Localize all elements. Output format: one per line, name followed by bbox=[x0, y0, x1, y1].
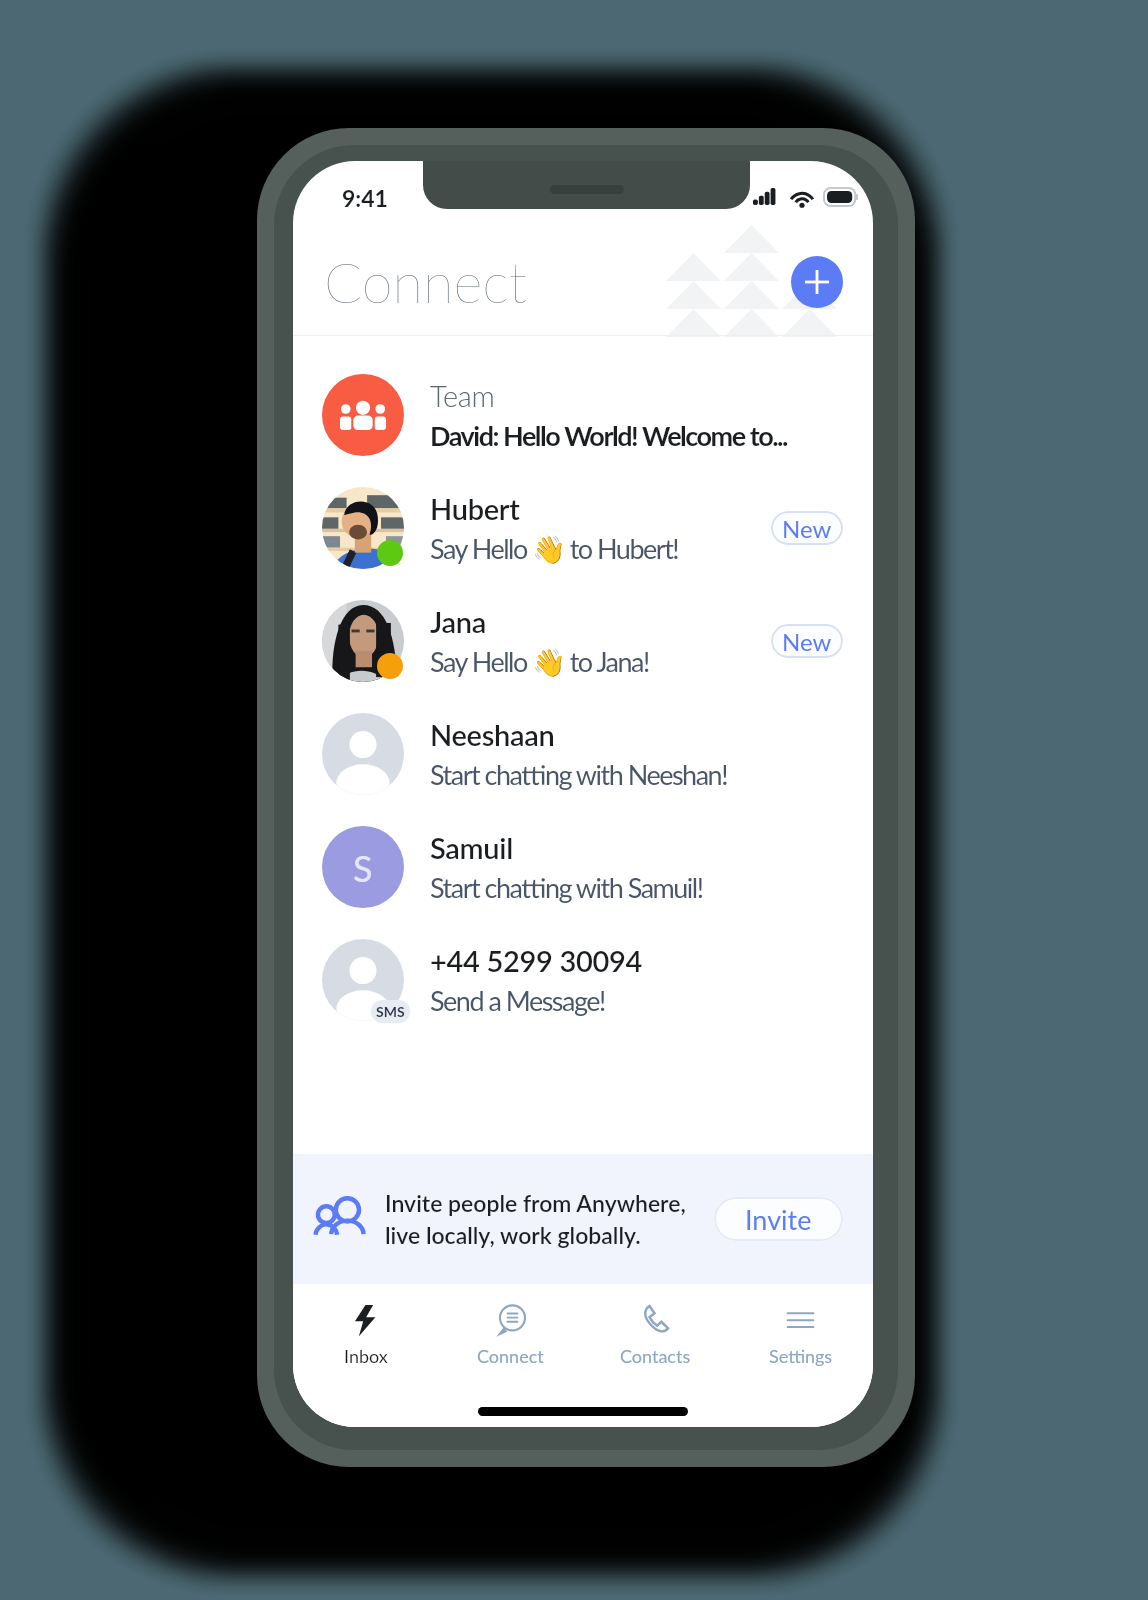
staticText: Start chatting with Neeshan! bbox=[430, 758, 727, 790]
staticText: Jana bbox=[430, 604, 487, 639]
staticText: Settings bbox=[769, 1345, 833, 1367]
staticText: 9:41 bbox=[342, 184, 388, 212]
button[interactable]: Team bbox=[293, 358, 873, 471]
button[interactable]: Settings bbox=[728, 1284, 873, 1384]
button[interactable]: Jana bbox=[293, 584, 873, 697]
button[interactable]: Connect bbox=[438, 1284, 583, 1384]
staticText: New bbox=[782, 514, 832, 543]
button[interactable]: New bbox=[771, 511, 843, 545]
staticText: Contacts bbox=[620, 1345, 691, 1367]
staticText: David: Hello World! Welcome to... bbox=[430, 419, 787, 451]
staticText: Invite bbox=[745, 1203, 812, 1235]
button[interactable]: Neeshaan bbox=[293, 697, 873, 810]
staticText: Connect bbox=[477, 1345, 544, 1367]
staticText: Invite people from Anywhere, bbox=[385, 1189, 686, 1217]
staticText: Connect bbox=[324, 248, 527, 315]
button[interactable]: Contacts bbox=[583, 1284, 728, 1384]
staticText: Send a Message! bbox=[430, 984, 605, 1016]
staticText: +44 5299 30094 bbox=[430, 943, 643, 978]
staticText: Samuil bbox=[430, 830, 513, 865]
staticText: New bbox=[782, 627, 832, 656]
button[interactable]: New chat bbox=[791, 256, 843, 308]
button[interactable]: Hubert bbox=[293, 471, 873, 584]
button[interactable]: SMS bbox=[293, 923, 873, 1036]
button[interactable]: S bbox=[293, 810, 873, 923]
staticText: Inbox bbox=[344, 1345, 388, 1367]
staticText: SMS bbox=[376, 1003, 405, 1020]
staticText: live locally, work globally. bbox=[385, 1221, 641, 1249]
staticText: Neeshaan bbox=[430, 717, 555, 752]
button[interactable]: Inbox bbox=[293, 1284, 438, 1384]
staticText: Start chatting with Samuil! bbox=[430, 871, 703, 903]
staticText: S bbox=[353, 846, 373, 889]
staticText: Say Hello 👋 to Jana! bbox=[430, 645, 649, 678]
button[interactable]: Invite bbox=[714, 1197, 843, 1241]
staticText: Team bbox=[430, 378, 495, 413]
button[interactable]: New bbox=[771, 624, 843, 658]
staticText: Hubert bbox=[430, 491, 520, 526]
staticText: Say Hello 👋 to Hubert! bbox=[430, 532, 679, 565]
